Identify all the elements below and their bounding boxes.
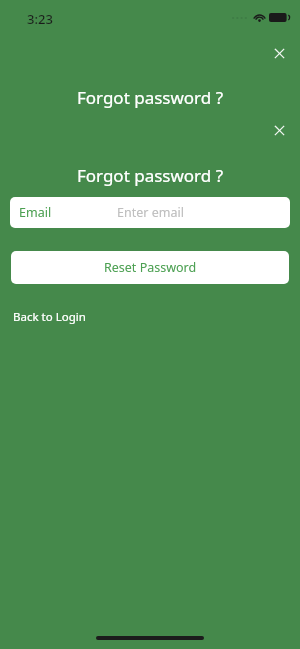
staticText: Enter email: [117, 204, 184, 221]
staticText: Reset Password: [104, 259, 197, 276]
button[interactable]: Close: [264, 38, 294, 68]
staticText: 3:23: [27, 10, 53, 28]
staticText: Forgot password ?: [0, 86, 300, 109]
staticText: Forgot password ?: [0, 164, 300, 187]
button[interactable]: Close: [264, 115, 294, 145]
button[interactable]: Back to Login: [10, 305, 89, 329]
staticText: Email: [19, 204, 52, 221]
button[interactable]: Email: [10, 197, 290, 228]
staticText: Back to Login: [13, 309, 86, 325]
button[interactable]: Reset Password: [11, 251, 289, 284]
